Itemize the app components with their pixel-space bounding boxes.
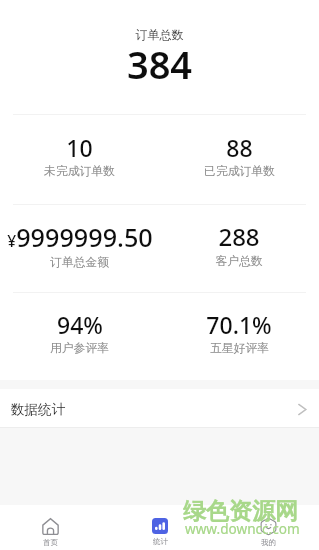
- staticText: 订单总数: [0, 27, 319, 42]
- staticText: 88: [226, 132, 253, 163]
- staticText: 已完成订单数: [204, 164, 275, 179]
- staticText: 用户参评率: [50, 341, 109, 356]
- staticText: 客户总数: [215, 254, 263, 269]
- staticText: 五星好评率: [210, 341, 269, 356]
- staticText: www.downcc.com: [185, 519, 300, 538]
- button[interactable]: Home: [0, 508, 104, 550]
- staticText: 统计: [153, 537, 168, 546]
- button[interactable]: 数据统计: [0, 389, 319, 427]
- staticText: ¥9999999.50: [7, 220, 153, 254]
- button[interactable]: Statistics: [107, 508, 213, 550]
- staticText: 首页: [43, 538, 58, 547]
- staticText: 94%: [57, 309, 103, 340]
- staticText: 10: [66, 132, 93, 163]
- staticText: 我的: [261, 538, 276, 547]
- staticText: 绿色资源网: [183, 497, 298, 526]
- staticText: 384: [0, 38, 319, 90]
- staticText: 订单总金额: [50, 255, 109, 270]
- button[interactable]: Profile: [215, 508, 319, 550]
- staticText: 未完成订单数: [44, 164, 115, 179]
- staticText: 288: [218, 220, 260, 253]
- staticText: 数据统计: [11, 401, 66, 418]
- staticText: 70.1%: [206, 309, 272, 340]
